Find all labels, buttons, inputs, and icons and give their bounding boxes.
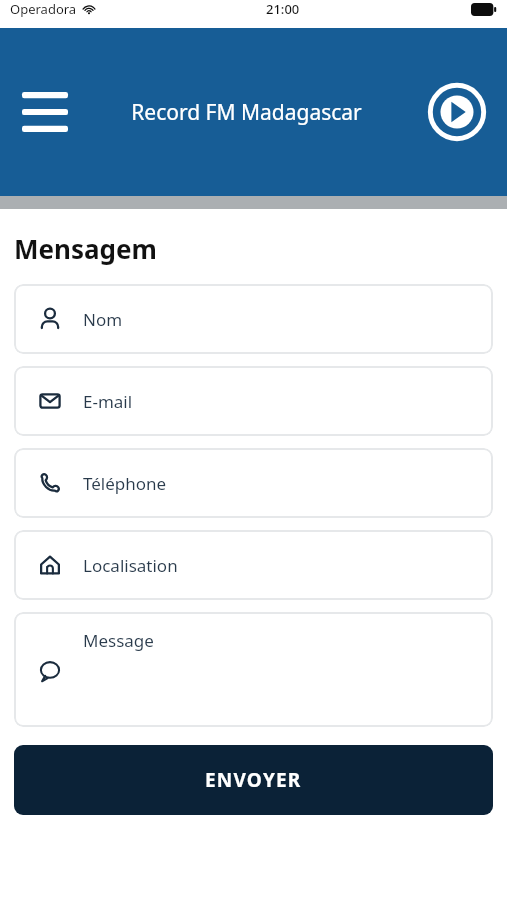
staticText: Nom xyxy=(83,308,123,331)
button[interactable]: Localisation xyxy=(14,530,493,600)
button[interactable]: Play xyxy=(426,81,488,143)
staticText: ENVOYER xyxy=(205,767,302,793)
staticText: Record FM Madagascar xyxy=(131,98,362,127)
staticText: 21:00 xyxy=(266,0,300,18)
button[interactable]: Nom xyxy=(14,284,493,354)
staticText: Localisation xyxy=(83,554,178,577)
button[interactable]: ENVOYER xyxy=(14,745,493,815)
button[interactable]: Menu xyxy=(18,85,72,139)
staticText: Mensagem xyxy=(14,231,157,266)
button[interactable]: E-mail xyxy=(14,366,493,436)
button[interactable]: Message xyxy=(14,612,493,727)
staticText: E-mail xyxy=(83,390,133,413)
button[interactable]: Téléphone xyxy=(14,448,493,518)
staticText: Message xyxy=(83,629,154,652)
staticText: Téléphone xyxy=(83,472,167,495)
staticText: Operadora xyxy=(10,0,77,18)
